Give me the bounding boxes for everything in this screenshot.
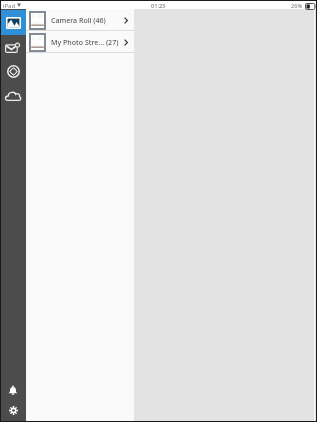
staticText: My Photo Stre... (27) xyxy=(51,37,119,47)
button[interactable]: Camera Roll (46) xyxy=(26,9,134,31)
staticText: iPad xyxy=(3,2,16,10)
button[interactable]: Notifications xyxy=(0,379,26,401)
button[interactable]: Cloud xyxy=(0,83,26,108)
button[interactable]: Photos xyxy=(0,10,26,35)
staticText: Camera Roll (46) xyxy=(51,15,106,25)
button[interactable]: Mail xyxy=(0,34,26,59)
staticText: 01:23 xyxy=(151,2,166,10)
button[interactable]: Settings xyxy=(0,399,26,421)
button[interactable]: Discover xyxy=(0,59,26,84)
staticText: 26% xyxy=(291,2,303,10)
button[interactable]: My Photo Stre... (27) xyxy=(26,31,134,53)
